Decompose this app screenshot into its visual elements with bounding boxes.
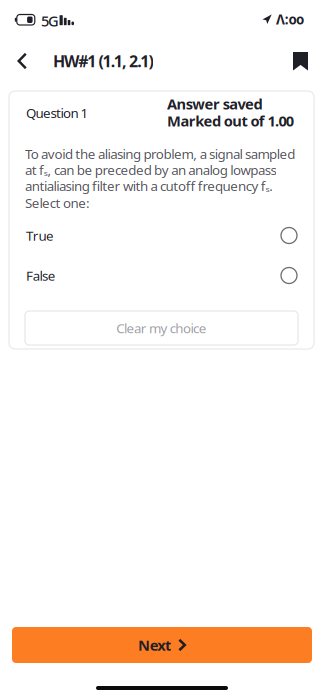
staticText: To avoid the aliasing problem, a signal … (25, 145, 295, 163)
staticText: 5G (41, 11, 59, 30)
button[interactable]: Next (12, 627, 312, 663)
staticText: at fₛ, can be preceded by an analog lowp… (25, 161, 276, 179)
button[interactable]: Clear my choice (25, 311, 298, 345)
staticText: Answer saved (167, 94, 262, 113)
staticText: antialiasing filter with a cutoff freque… (25, 177, 273, 195)
staticText: Marked out of 1.00 (167, 111, 294, 130)
staticText: Select one: (25, 194, 90, 212)
button[interactable]: Back (8, 44, 36, 77)
button[interactable]: False (9, 256, 314, 295)
staticText: HW#1 (1.1, 2.1) (53, 50, 153, 72)
staticText: Λ:oo (276, 10, 304, 28)
staticText: Next (138, 635, 171, 655)
staticText: Question 1 (26, 104, 88, 122)
button[interactable]: True (9, 216, 314, 255)
staticText: Clear my choice (116, 319, 207, 337)
staticText: False (26, 267, 56, 284)
button[interactable]: Bookmark (284, 44, 317, 78)
staticText: True (26, 227, 54, 244)
